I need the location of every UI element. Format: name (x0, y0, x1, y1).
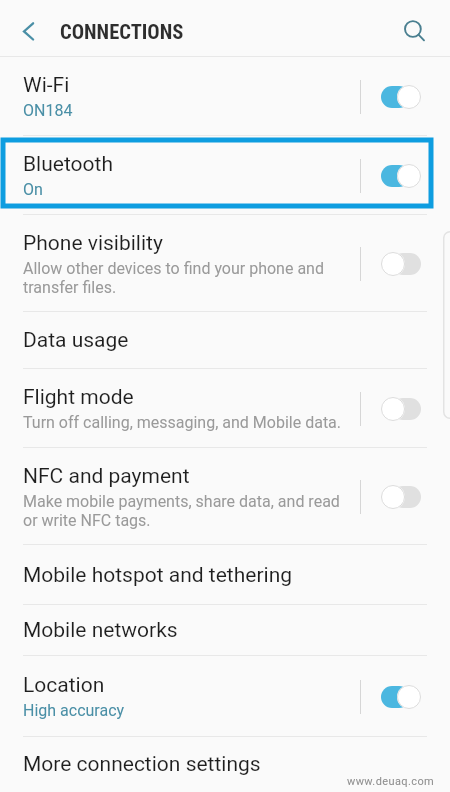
staticText: Mobile networks (23, 618, 178, 643)
button[interactable]: Switch off (381, 251, 421, 277)
staticText: Mobile hotspot and tethering (23, 563, 293, 588)
button[interactable]: Switch on (381, 163, 421, 189)
staticText: Bluetooth (23, 152, 113, 177)
staticText: Phone visibility (23, 231, 163, 256)
button[interactable]: Switch off (381, 396, 421, 422)
button[interactable]: Mobile networks (0, 605, 450, 656)
staticText: High accuracy (23, 701, 125, 720)
button[interactable]: Search (391, 6, 436, 51)
staticText: Data usage (23, 328, 129, 353)
button[interactable]: Location (0, 656, 450, 737)
button[interactable]: NFC and payment (0, 448, 450, 545)
staticText: www.deuaq.com (347, 775, 435, 788)
button[interactable]: Data usage (0, 312, 450, 369)
staticText: On (23, 180, 43, 199)
staticText: Make mobile payments, share data, and re… (23, 492, 340, 530)
staticText: Allow other devices to find your phone a… (23, 259, 324, 297)
staticText: Flight mode (23, 385, 134, 410)
staticText: CONNECTIONS (60, 20, 184, 44)
staticText: Turn off calling, messaging, and Mobile … (23, 413, 342, 432)
button[interactable]: Bluetooth (0, 136, 450, 215)
button[interactable]: Wi-Fi (0, 57, 450, 136)
staticText: Wi-Fi (23, 73, 70, 98)
button[interactable]: Switch off (381, 484, 421, 510)
button[interactable]: Phone visibility (0, 215, 450, 312)
button[interactable]: Switch on (381, 84, 421, 110)
button[interactable]: Back (5, 6, 50, 51)
button[interactable]: Switch on (381, 684, 421, 710)
button[interactable]: Mobile hotspot and tethering (0, 545, 450, 605)
staticText: ON184 (23, 101, 73, 120)
button[interactable]: More connection settings (0, 737, 450, 792)
button[interactable]: Flight mode (0, 369, 450, 448)
staticText: Location (23, 673, 105, 698)
staticText: NFC and payment (23, 464, 190, 489)
staticText: More connection settings (23, 752, 261, 777)
